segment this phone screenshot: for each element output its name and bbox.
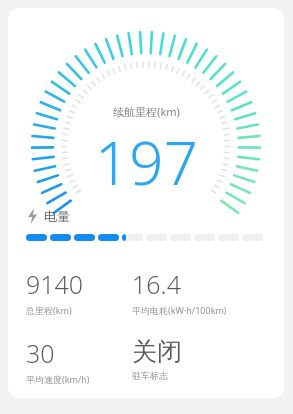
button[interactable] xyxy=(26,234,266,241)
staticText: 平均速度(km/h) xyxy=(26,373,90,385)
staticText: 驻车标志 xyxy=(132,370,168,381)
button[interactable]: 30 xyxy=(26,336,132,385)
button[interactable]: 9140 xyxy=(26,267,132,316)
button[interactable]: Battery xyxy=(26,208,70,224)
staticText: 197 xyxy=(95,121,198,203)
button[interactable]: 关闭 xyxy=(132,336,274,381)
staticText: 电量 xyxy=(44,208,70,224)
staticText: 关闭 xyxy=(132,336,182,367)
other: Battery xyxy=(26,208,39,224)
staticText: 平均电耗(kW·h/100km) xyxy=(132,304,227,316)
button[interactable]: 16.4 xyxy=(132,267,274,316)
staticText: 16.4 xyxy=(132,267,181,301)
staticText: 9140 xyxy=(26,267,84,301)
staticText: 总里程(km) xyxy=(26,304,72,316)
staticText: 30 xyxy=(26,336,55,370)
staticText: 续航里程(km) xyxy=(113,104,180,119)
